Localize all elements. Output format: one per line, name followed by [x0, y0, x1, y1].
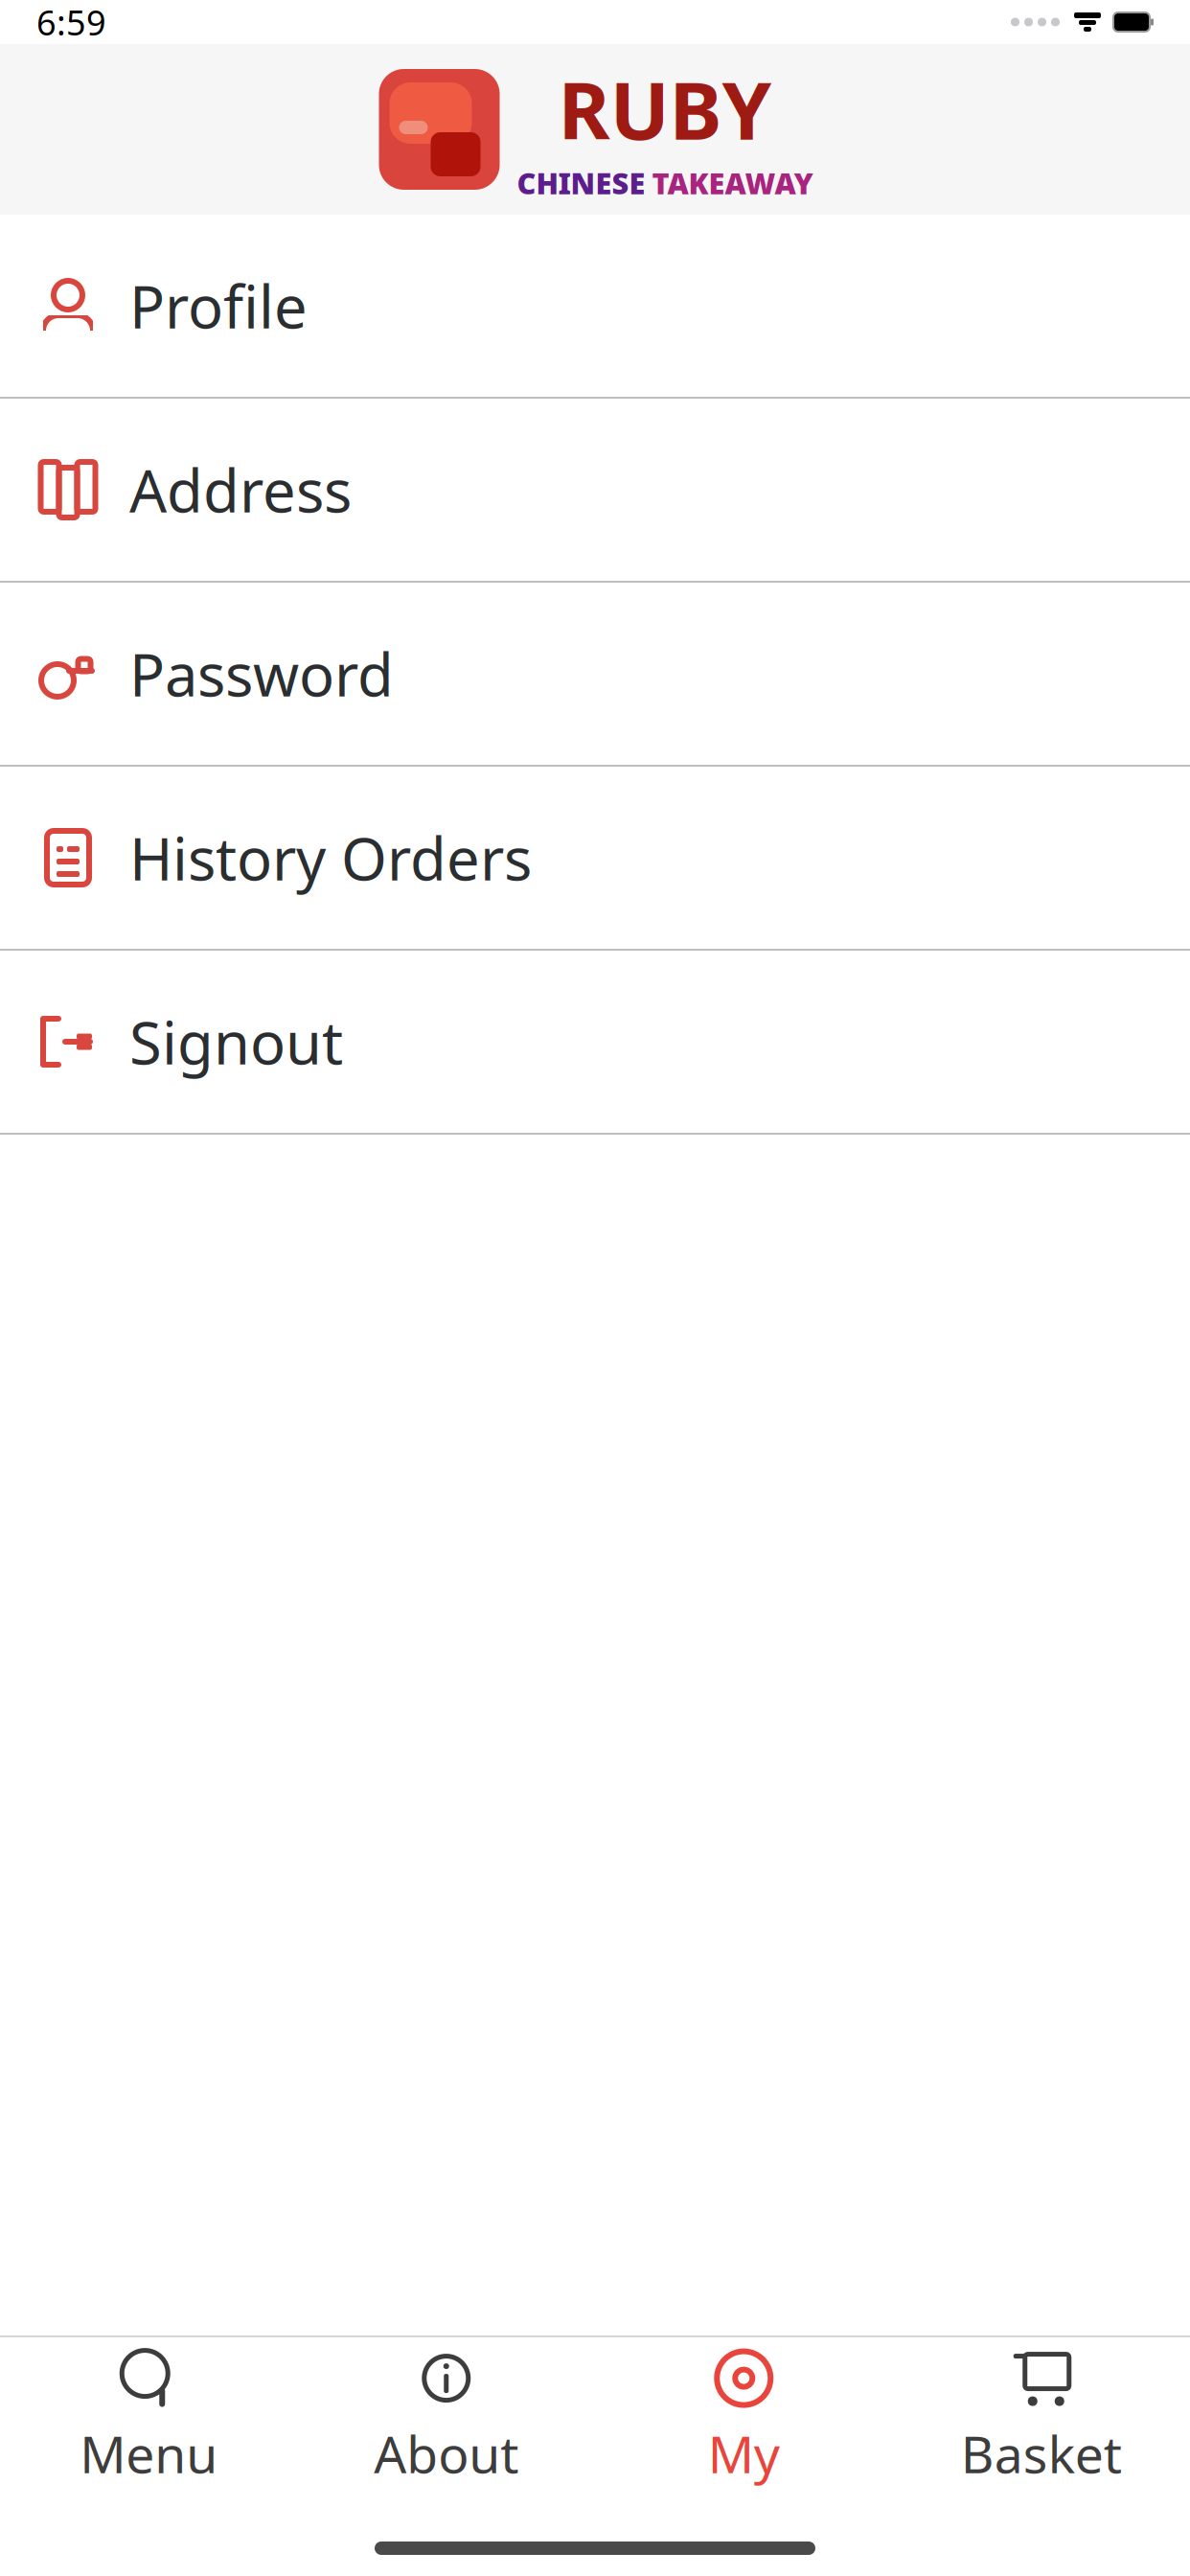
- staticText: About: [374, 2419, 519, 2487]
- button[interactable]: History Orders: [0, 767, 1190, 951]
- button[interactable]: Signout: [0, 951, 1190, 1135]
- button[interactable]: Password: [0, 583, 1190, 767]
- staticText: History Orders: [129, 819, 532, 897]
- staticText: Profile: [129, 267, 308, 345]
- button[interactable]: About: [297, 2331, 595, 2497]
- button[interactable]: My: [595, 2331, 892, 2497]
- staticText: My: [708, 2419, 780, 2487]
- staticText: RUBY: [558, 56, 772, 161]
- staticText: 6:59: [36, 0, 106, 45]
- staticText: Menu: [80, 2419, 218, 2487]
- button[interactable]: Profile: [0, 215, 1190, 399]
- staticText: CHINESE: [517, 163, 645, 202]
- button[interactable]: Basket: [892, 2331, 1190, 2497]
- staticText: Password: [129, 635, 394, 713]
- staticText: Signout: [129, 1003, 343, 1081]
- staticText: Address: [129, 451, 352, 529]
- button[interactable]: Address: [0, 399, 1190, 583]
- staticText: TAKEAWAY: [652, 163, 813, 202]
- button[interactable]: Menu: [0, 2331, 297, 2497]
- staticText: Basket: [961, 2419, 1122, 2487]
